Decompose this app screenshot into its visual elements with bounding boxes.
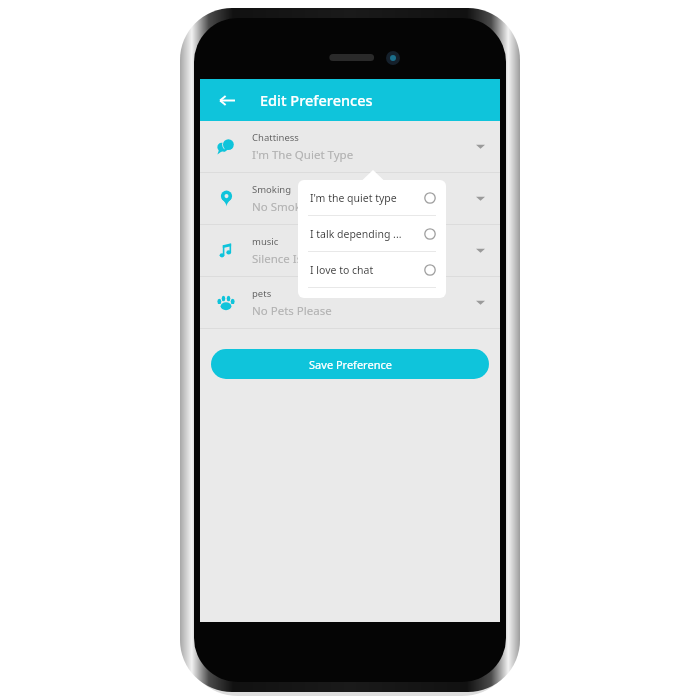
staticText: No Pets Please [252, 303, 332, 319]
staticText: Save Preference [309, 357, 392, 372]
staticText: No Smoking [252, 199, 318, 215]
staticText: pets [252, 287, 272, 300]
staticText: Silence Is Golden [252, 251, 345, 267]
button[interactable]: I'm the quiet type [298, 180, 446, 215]
button[interactable]: music [200, 225, 500, 276]
staticText: music [252, 235, 279, 248]
staticText: I love to chat [310, 263, 424, 277]
staticText: I'm The Quiet Type [252, 147, 354, 163]
staticText: Chattiness [252, 131, 299, 144]
button[interactable]: I love to chat [298, 252, 446, 287]
button[interactable]: Back [212, 86, 240, 114]
button[interactable]: pets [200, 277, 500, 328]
staticText: Edit Preferences [260, 90, 373, 110]
button[interactable]: Chattiness [200, 121, 500, 172]
staticText: Smoking [252, 183, 292, 196]
button[interactable]: Expand Chattiness [460, 121, 500, 172]
button[interactable]: I talk depending ... [298, 216, 446, 251]
button[interactable]: Smoking [200, 173, 500, 224]
button[interactable]: Expand pets [460, 277, 500, 328]
button[interactable]: Save Preference [211, 349, 489, 379]
button[interactable]: Expand Smoking [460, 173, 500, 224]
staticText: I'm the quiet type [310, 191, 424, 205]
button[interactable]: Expand music [460, 225, 500, 276]
staticText: I talk depending ... [310, 227, 424, 241]
